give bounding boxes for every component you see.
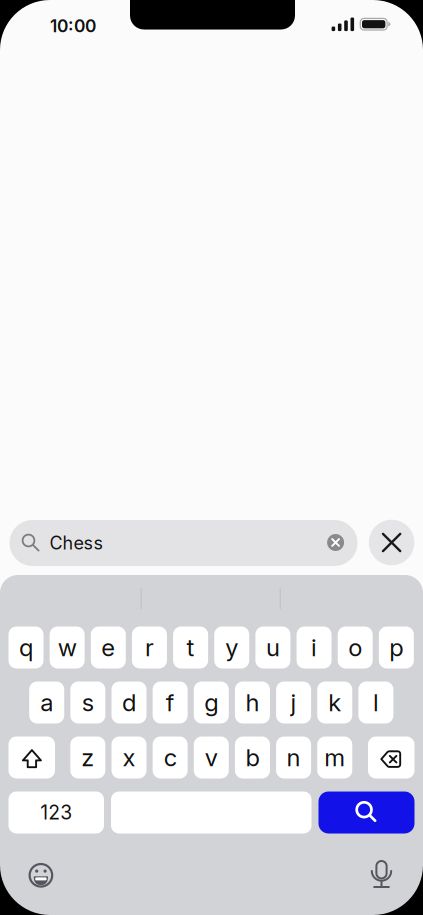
staticText: x xyxy=(122,743,135,772)
staticText: t xyxy=(187,633,195,662)
staticText: a xyxy=(40,688,53,717)
button[interactable]: v xyxy=(194,736,229,778)
staticText: f xyxy=(166,688,175,717)
button[interactable]: u xyxy=(255,626,290,668)
staticText: c xyxy=(164,743,177,772)
button[interactable]: Shift xyxy=(8,736,55,778)
staticText: h xyxy=(245,688,259,717)
button[interactable]: k xyxy=(317,681,352,723)
staticText: 123 xyxy=(40,801,72,824)
staticText: y xyxy=(225,633,238,662)
button[interactable]: Emoji xyxy=(27,861,55,889)
staticText: e xyxy=(101,633,115,662)
staticText: v xyxy=(205,743,218,772)
button[interactable]: s xyxy=(70,681,105,723)
staticText: u xyxy=(266,633,280,662)
staticText: Chess xyxy=(49,532,103,554)
button[interactable]: c xyxy=(153,736,188,778)
staticText: w xyxy=(58,633,77,662)
staticText: o xyxy=(348,633,362,662)
staticText: m xyxy=(324,743,345,772)
button[interactable]: Clear text xyxy=(327,534,344,551)
button[interactable]: Space xyxy=(111,791,311,833)
staticText: b xyxy=(245,743,259,772)
button[interactable]: Chess xyxy=(9,520,357,566)
button[interactable]: q xyxy=(8,626,43,668)
button[interactable]: l xyxy=(358,681,393,723)
button[interactable]: b xyxy=(235,736,270,778)
button[interactable]: e xyxy=(91,626,126,668)
staticText: j xyxy=(291,688,297,717)
button[interactable]: j xyxy=(276,681,311,723)
button[interactable]: 123 xyxy=(8,791,104,833)
staticText: k xyxy=(328,688,341,717)
staticText: s xyxy=(82,688,94,717)
button[interactable]: w xyxy=(50,626,85,668)
button[interactable]: m xyxy=(317,736,352,778)
button[interactable]: p xyxy=(379,626,414,668)
button[interactable]: z xyxy=(70,736,105,778)
staticText: g xyxy=(204,688,218,717)
button[interactable]: Close search xyxy=(369,520,414,565)
button[interactable]: g xyxy=(194,681,229,723)
staticText: 10:00 xyxy=(50,15,96,36)
button[interactable]: x xyxy=(111,736,146,778)
button[interactable]: Delete xyxy=(368,736,414,778)
staticText: z xyxy=(81,743,94,772)
staticText: r xyxy=(145,633,154,662)
staticText: n xyxy=(287,743,301,772)
staticText: p xyxy=(389,633,403,662)
button[interactable]: Dictate xyxy=(367,860,395,888)
button[interactable]: d xyxy=(111,681,146,723)
staticText: l xyxy=(373,688,379,717)
button[interactable]: n xyxy=(276,736,311,778)
button[interactable]: o xyxy=(338,626,373,668)
button[interactable]: r xyxy=(132,626,167,668)
button[interactable]: i xyxy=(297,626,332,668)
button[interactable]: Search xyxy=(318,791,414,833)
staticText: d xyxy=(122,688,136,717)
staticText: i xyxy=(311,633,317,662)
button[interactable]: y xyxy=(214,626,249,668)
button[interactable]: a xyxy=(29,681,64,723)
staticText: q xyxy=(19,633,33,662)
button[interactable]: h xyxy=(235,681,270,723)
button[interactable]: t xyxy=(173,626,208,668)
button[interactable]: f xyxy=(153,681,188,723)
